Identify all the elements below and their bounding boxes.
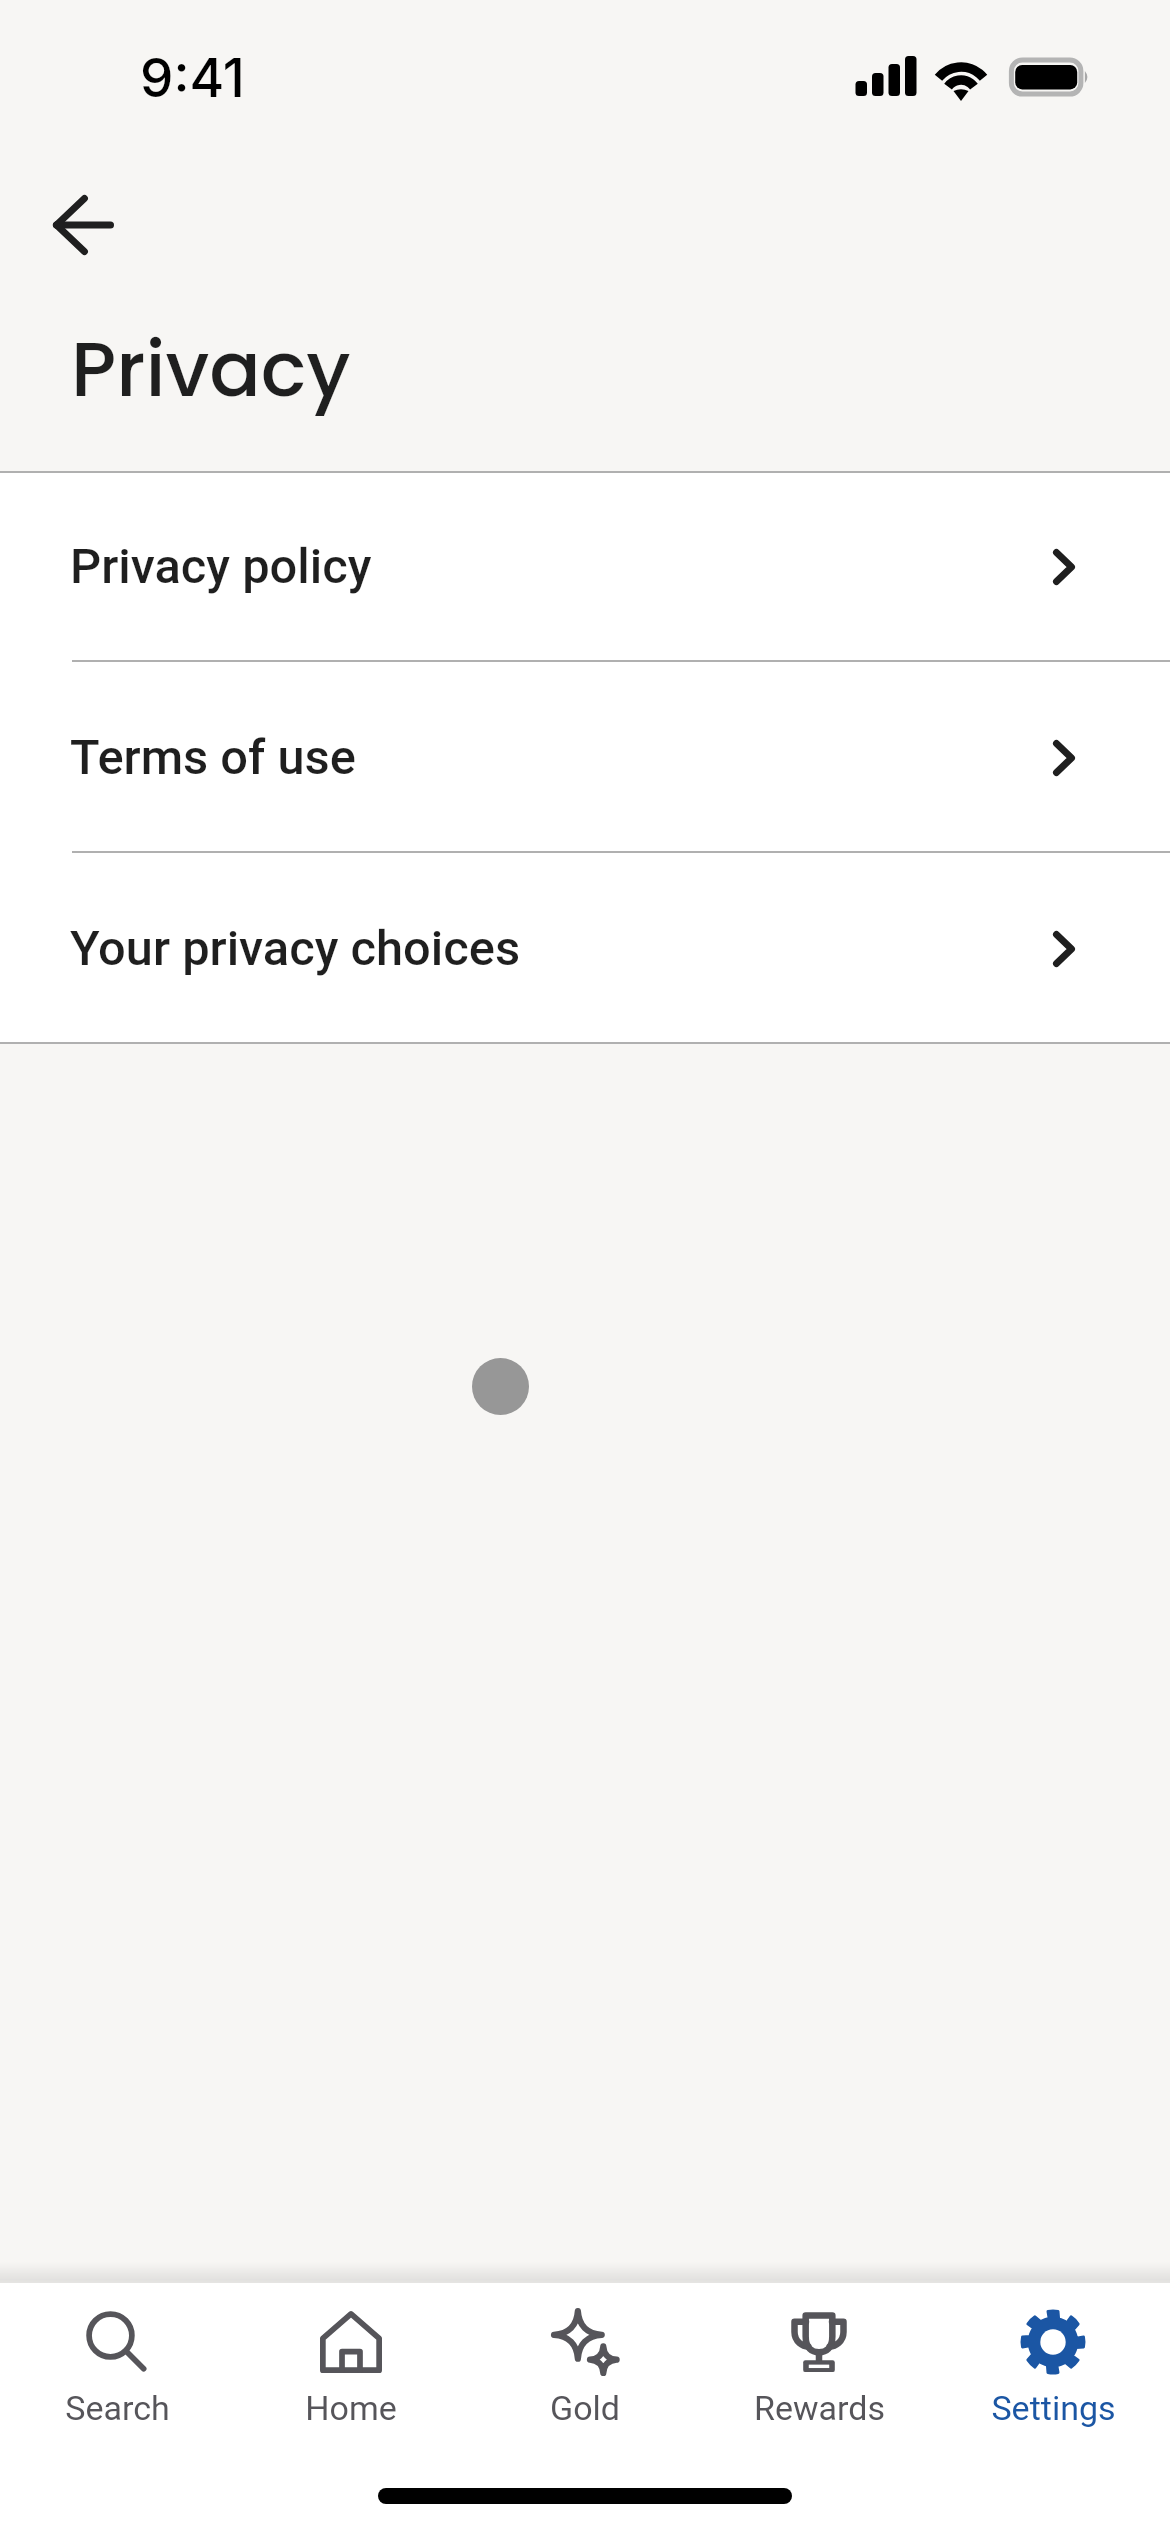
staticText: 9:41 xyxy=(140,46,245,110)
staticText: Gold xyxy=(550,2388,620,2428)
button[interactable]: Privacy policy xyxy=(0,471,1170,662)
button[interactable]: Terms of use xyxy=(0,662,1170,853)
staticText: Privacy xyxy=(71,316,351,422)
button[interactable]: Home xyxy=(234,2283,468,2443)
staticText: Rewards xyxy=(754,2388,885,2428)
button[interactable]: Search xyxy=(0,2283,234,2443)
staticText: Your privacy choices xyxy=(70,920,521,977)
staticText: Terms of use xyxy=(70,729,356,786)
staticText: Search xyxy=(65,2388,170,2428)
staticText: Home xyxy=(305,2388,397,2428)
button[interactable]: Back xyxy=(23,165,143,285)
staticText: Settings xyxy=(991,2388,1116,2428)
staticText: Privacy policy xyxy=(70,538,372,595)
button[interactable]: Settings xyxy=(936,2283,1170,2443)
button[interactable]: Gold xyxy=(468,2283,702,2443)
button[interactable]: Your privacy choices xyxy=(0,853,1170,1044)
button[interactable]: Rewards xyxy=(702,2283,936,2443)
